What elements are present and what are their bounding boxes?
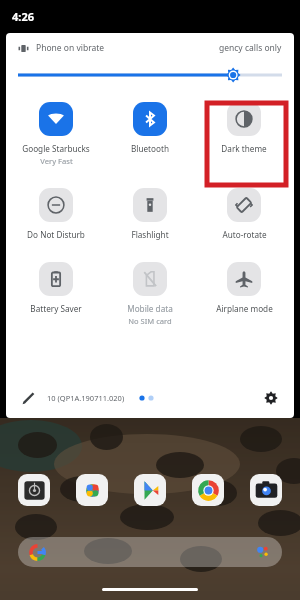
button[interactable]: Edit tiles — [19, 389, 37, 407]
button[interactable]: Play Store — [134, 474, 166, 506]
staticText: Auto-rotate — [222, 229, 267, 240]
staticText: 10 (QP1A.190711.020) — [47, 393, 125, 403]
button[interactable]: Do Not Disturb — [12, 186, 100, 242]
button[interactable] — [18, 66, 282, 84]
button[interactable]: Airplane mode — [200, 260, 288, 316]
button[interactable]: Settings — [261, 388, 281, 408]
button[interactable]: Battery Saver — [12, 260, 100, 316]
staticText: Bluetooth — [131, 143, 169, 154]
button[interactable]: Camera — [250, 474, 282, 506]
staticText: No SIM card — [128, 316, 172, 326]
button[interactable]: Flashlight — [106, 186, 194, 242]
staticText: Mobile data — [127, 303, 173, 314]
staticText: gency calls only — [219, 42, 282, 54]
staticText: 4:26 — [12, 9, 34, 24]
staticText: Do Not Disturb — [27, 229, 85, 240]
staticText: Phone on vibrate — [36, 42, 105, 54]
staticText: Airplane mode — [216, 303, 273, 314]
staticText: Flashlight — [131, 229, 169, 240]
button[interactable]: Bluetooth — [106, 100, 194, 156]
staticText: Google Starbucks — [22, 143, 90, 154]
button[interactable]: Camera app — [18, 474, 50, 506]
staticText: Very Fast — [40, 156, 73, 166]
button[interactable]: Chrome — [192, 474, 224, 506]
button[interactable]: Auto-rotate — [200, 186, 288, 242]
button[interactable]: Dark theme — [200, 100, 288, 156]
button[interactable]: Photos — [76, 474, 108, 506]
button[interactable]: Google Starbucks — [12, 100, 100, 168]
button[interactable]: Mobile data — [106, 260, 194, 328]
button[interactable] — [18, 537, 282, 567]
staticText: Battery Saver — [30, 303, 82, 314]
staticText: Dark theme — [221, 143, 267, 154]
